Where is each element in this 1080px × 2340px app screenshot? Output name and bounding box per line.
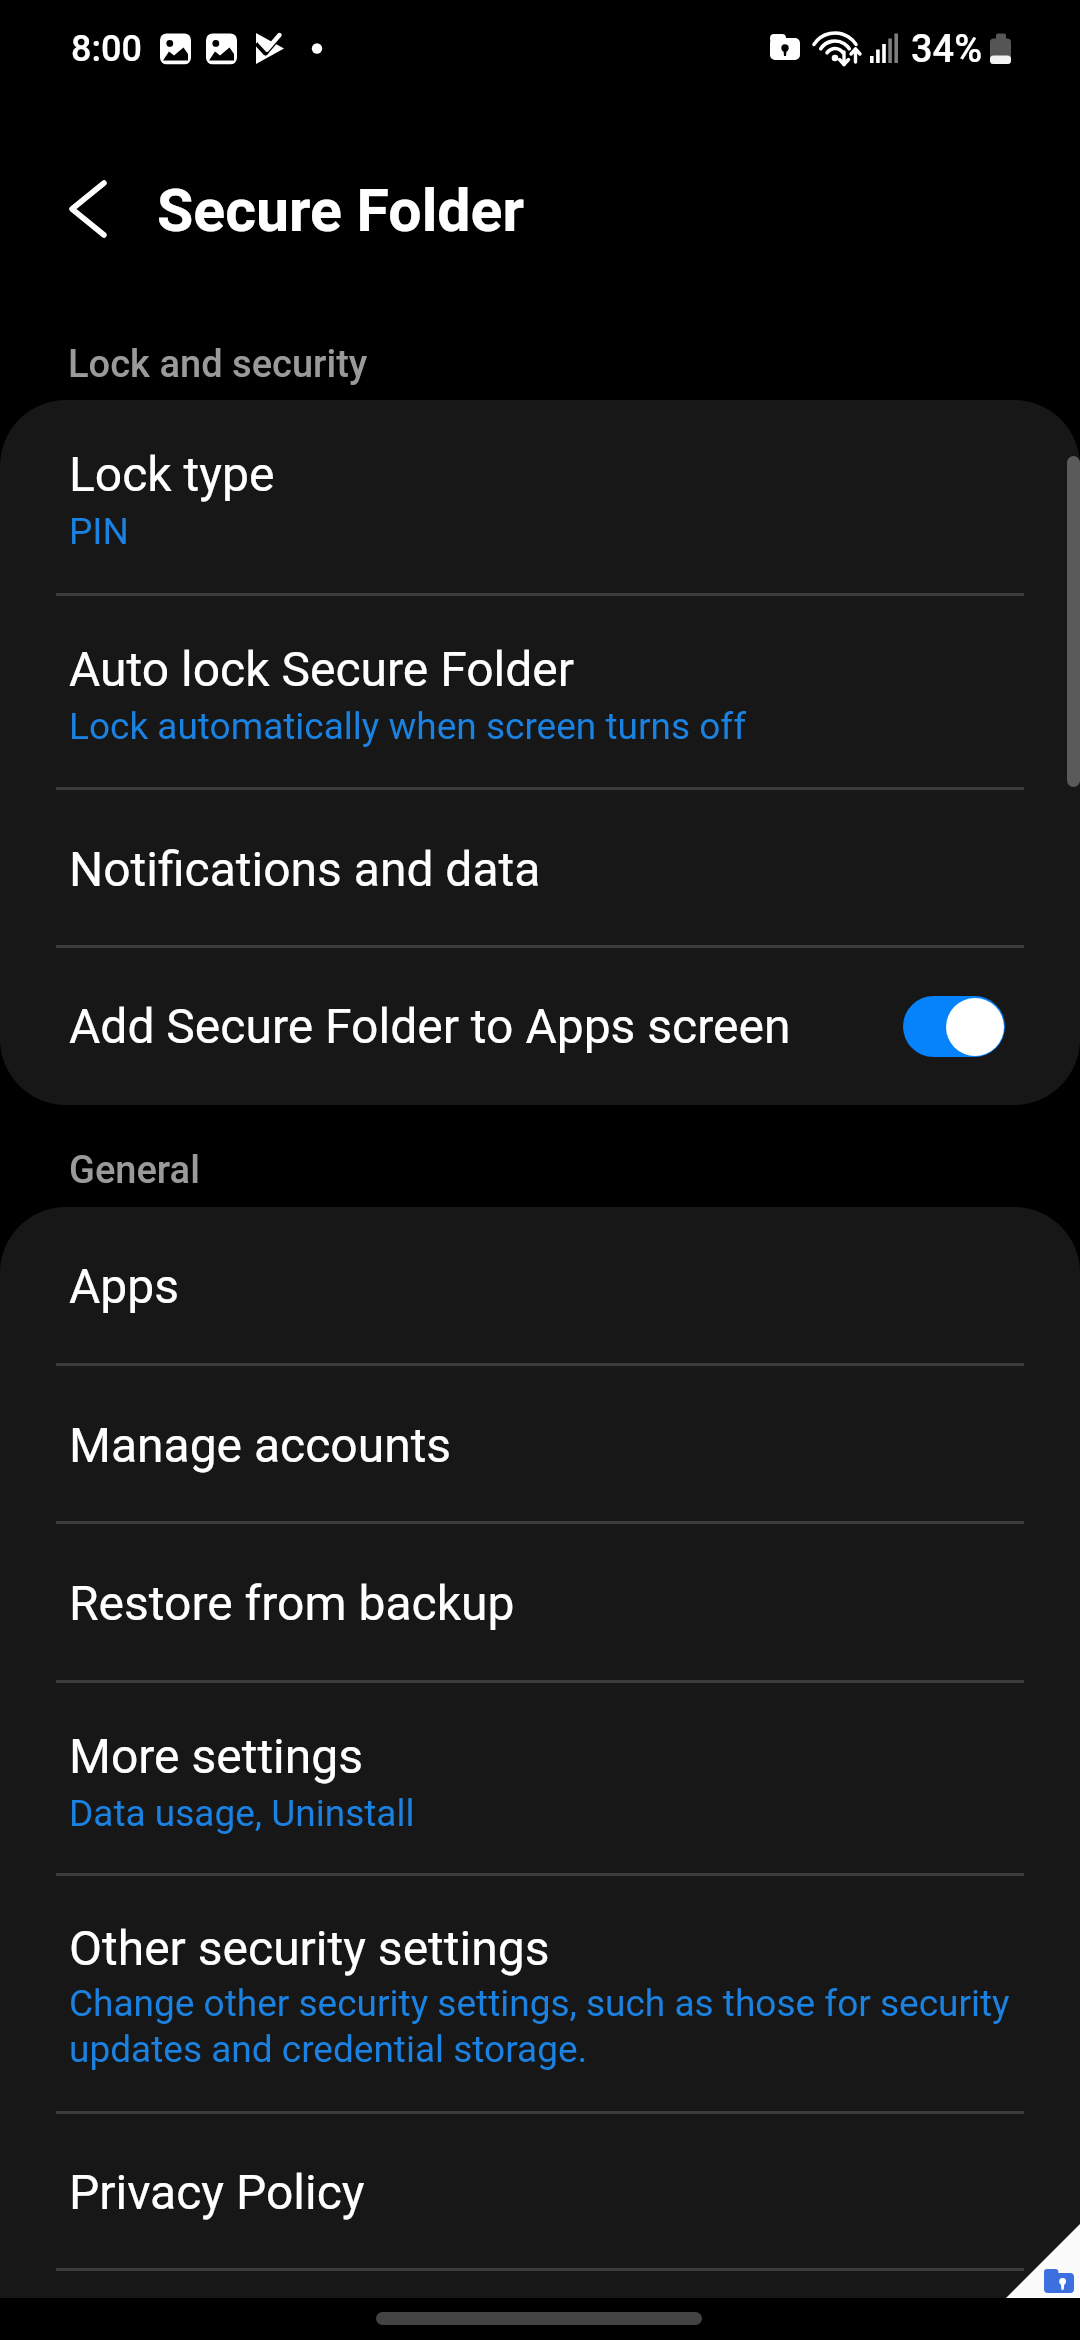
button[interactable]: More settings xyxy=(0,1683,1080,1876)
staticText: General xyxy=(69,1148,200,1193)
staticText: Notifications and data xyxy=(69,841,541,897)
staticText: 34% xyxy=(911,27,983,72)
button[interactable]: Notifications and data xyxy=(0,790,1080,948)
staticText: 8:00 xyxy=(71,28,142,70)
button[interactable]: Auto lock Secure Folder xyxy=(0,596,1080,790)
staticText: Lock type xyxy=(69,446,275,502)
button[interactable]: Add Secure Folder to Apps screen xyxy=(903,996,1005,1057)
button[interactable]: Apps xyxy=(0,1207,1080,1366)
button[interactable]: Other security settings xyxy=(0,1876,1080,2114)
button[interactable]: Lock type xyxy=(0,400,1080,596)
staticText: Other security settings xyxy=(69,1920,550,1976)
button[interactable]: Navigate up xyxy=(40,161,136,257)
button[interactable]: Restore from backup xyxy=(0,1524,1080,1683)
staticText: Lock and security xyxy=(68,342,368,387)
staticText: Auto lock Secure Folder xyxy=(69,641,575,697)
staticText: Lock automatically when screen turns off xyxy=(69,705,747,748)
button[interactable]: Privacy Policy xyxy=(0,2114,1080,2271)
staticText: Secure Folder xyxy=(157,176,525,245)
button[interactable]: Add Secure Folder to Apps screen xyxy=(0,948,1080,1105)
staticText: Data usage, Uninstall xyxy=(69,1792,415,1835)
staticText: Apps xyxy=(69,1258,179,1314)
staticText: More settings xyxy=(69,1728,363,1784)
button[interactable]: Manage accounts xyxy=(0,1366,1080,1524)
staticText: Manage accounts xyxy=(69,1417,452,1473)
staticText: Add Secure Folder to Apps screen xyxy=(69,998,791,1054)
staticText: Change other security settings, such as … xyxy=(69,1982,1024,2071)
staticText: Privacy Policy xyxy=(69,2164,365,2220)
staticText: Restore from backup xyxy=(69,1575,515,1631)
staticText: PIN xyxy=(69,510,129,553)
